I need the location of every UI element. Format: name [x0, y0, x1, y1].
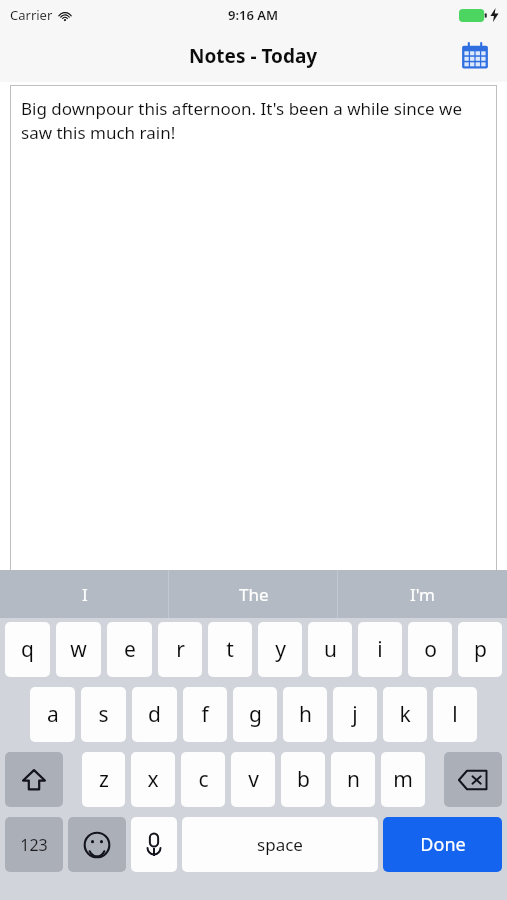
staticText: The [239, 583, 269, 606]
staticText: s [98, 700, 109, 729]
staticText: n [347, 765, 360, 794]
button[interactable]: c [181, 752, 225, 807]
button[interactable]: y [258, 622, 302, 677]
button[interactable]: q [5, 622, 50, 677]
button[interactable]: Shift [5, 752, 63, 807]
staticText: d [148, 700, 161, 729]
button[interactable]: Calendar [455, 36, 495, 76]
button[interactable]: v [231, 752, 275, 807]
button[interactable]: l [433, 687, 477, 742]
button[interactable]: h [283, 687, 327, 742]
staticText: Notes - Today [189, 43, 318, 69]
button[interactable]: Done [383, 817, 502, 872]
staticText: i [377, 635, 383, 664]
staticText: p [474, 635, 487, 664]
button[interactable]: e [107, 622, 152, 677]
button[interactable]: a [30, 687, 75, 742]
button[interactable]: o [408, 622, 452, 677]
staticText: r [176, 635, 185, 664]
button[interactable]: m [381, 752, 425, 807]
staticText: a [47, 700, 59, 729]
button[interactable]: g [233, 687, 277, 742]
staticText: y [275, 635, 286, 664]
staticText: z [99, 765, 109, 794]
button[interactable]: x [131, 752, 175, 807]
staticText: e [124, 635, 136, 664]
button[interactable]: p [458, 622, 502, 677]
staticText: k [399, 700, 411, 729]
staticText: o [424, 635, 437, 664]
button[interactable]: b [281, 752, 325, 807]
button[interactable]: n [331, 752, 375, 807]
button[interactable]: 123 [5, 817, 63, 872]
staticText: b [297, 765, 310, 794]
button[interactable]: space [182, 817, 378, 872]
button[interactable]: I'm [338, 570, 507, 618]
button[interactable]: The [169, 570, 338, 618]
staticText: g [249, 700, 262, 729]
staticText: j [352, 700, 358, 729]
button[interactable]: s [81, 687, 126, 742]
button[interactable]: Big downpour this afternoon. It's been a… [10, 85, 497, 900]
staticText: 123 [20, 834, 48, 856]
button[interactable]: Dictate [131, 817, 177, 872]
button[interactable]: f [183, 687, 227, 742]
button[interactable]: Emoji [68, 817, 126, 872]
staticText: space [257, 833, 303, 856]
button[interactable]: u [308, 622, 352, 677]
staticText: 9:16 AM [228, 6, 279, 24]
button[interactable]: I [0, 570, 169, 618]
staticText: h [299, 700, 312, 729]
staticText: q [21, 635, 34, 664]
staticText: I'm [410, 583, 435, 606]
button[interactable]: z [82, 752, 125, 807]
button[interactable]: Backspace [444, 752, 502, 807]
staticText: Big downpour this afternoon. It's been a… [21, 97, 483, 144]
staticText: w [70, 635, 87, 664]
staticText: t [226, 635, 234, 664]
button[interactable]: d [132, 687, 177, 742]
button[interactable]: i [358, 622, 402, 677]
staticText: l [452, 700, 458, 729]
staticText: f [201, 700, 209, 729]
staticText: u [324, 635, 337, 664]
button[interactable]: w [56, 622, 101, 677]
button[interactable]: r [158, 622, 202, 677]
staticText: Done [420, 832, 466, 857]
button[interactable]: j [333, 687, 377, 742]
button[interactable]: t [208, 622, 252, 677]
staticText: Carrier [10, 6, 53, 24]
button[interactable]: k [383, 687, 427, 742]
staticText: x [147, 765, 159, 794]
staticText: c [198, 765, 209, 794]
staticText: I [82, 583, 88, 606]
staticText: v [248, 765, 259, 794]
staticText: m [393, 765, 413, 794]
